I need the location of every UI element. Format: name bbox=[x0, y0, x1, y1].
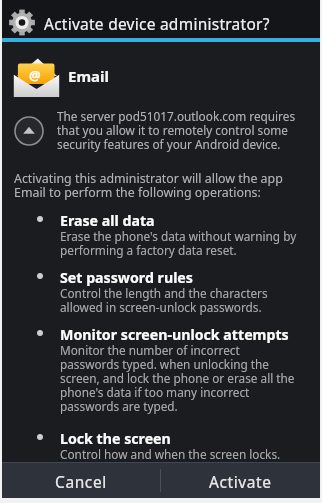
staticText: Cancel bbox=[55, 471, 107, 492]
staticText: Control the length and the characters al… bbox=[60, 285, 268, 316]
staticText: Erase all data bbox=[60, 211, 155, 230]
button[interactable] bbox=[14, 116, 44, 146]
button[interactable]: Activate bbox=[161, 465, 320, 498]
staticText: Activate device administrator? bbox=[44, 13, 270, 34]
staticText: The server pod51017.outlook.com requires… bbox=[57, 108, 296, 153]
staticText: Lock the screen bbox=[60, 429, 171, 448]
staticText: Email bbox=[68, 66, 109, 86]
staticText: Activate bbox=[209, 471, 272, 492]
staticText: Monitor screen-unlock attempts bbox=[60, 325, 289, 344]
staticText: @ bbox=[29, 66, 41, 84]
staticText: Monitor the number of incorrect password… bbox=[60, 342, 295, 415]
button[interactable]: Cancel bbox=[2, 465, 160, 498]
staticText: Erase the phone's data without warning b… bbox=[60, 228, 297, 259]
staticText: Control how and when the screen locks. bbox=[60, 446, 281, 462]
staticText: Activating this administrator will allow… bbox=[14, 170, 283, 201]
staticText: Set password rules bbox=[60, 268, 193, 287]
